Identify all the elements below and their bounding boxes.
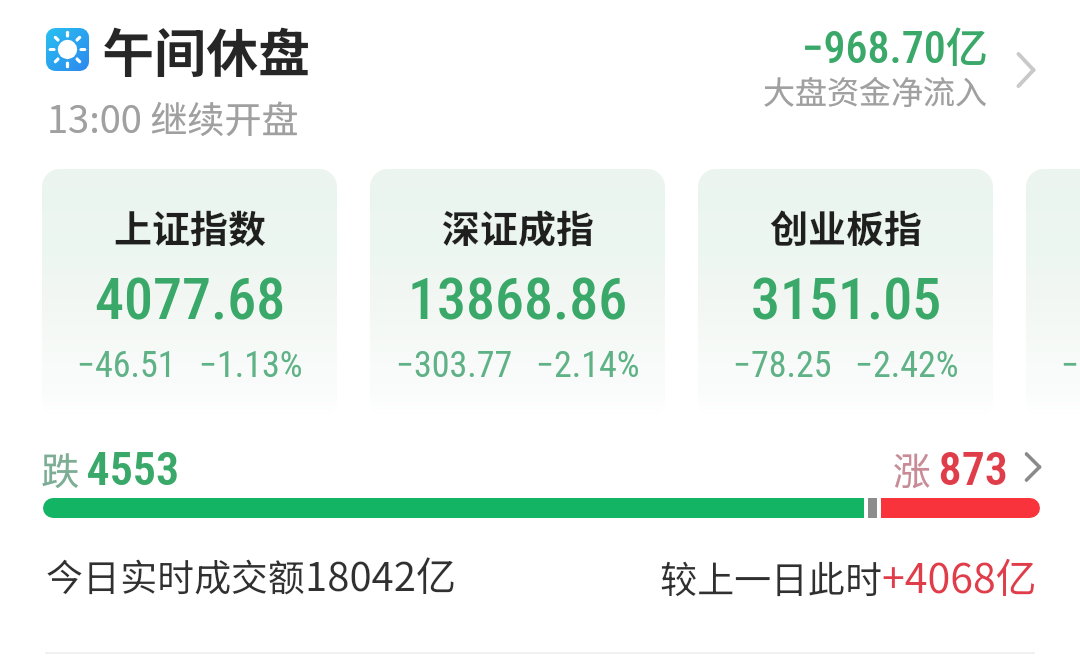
staticText: 大盘资金净流入 [763, 67, 988, 113]
staticText: 涨 873 [893, 441, 1009, 496]
staticText: 深证成指 [442, 199, 595, 254]
button[interactable]: 跌 4553 [41, 437, 1053, 529]
staticText: −2.14% [536, 344, 640, 386]
staticText: 创业板指 [770, 199, 923, 254]
staticText: 午间休盘 [102, 12, 311, 87]
staticText: 13:00 继续开盘 [47, 89, 299, 144]
button[interactable]: 上证指数 [42, 169, 337, 418]
staticText: 较上一日此时+4068亿 [660, 545, 1037, 604]
staticText: −19.22 [1061, 344, 1080, 386]
staticText: −1.13% [199, 344, 303, 386]
staticText: −303.77 [396, 344, 513, 386]
staticText: 今日实时成交额18042亿 [46, 545, 456, 603]
staticText: 上证指数 [114, 199, 267, 254]
button[interactable]: 创业板指 [698, 169, 993, 418]
staticText: 跌 4553 [41, 441, 180, 496]
staticText: −2.42% [855, 344, 959, 386]
other: Advances declines details [1013, 447, 1053, 487]
staticText: −968.70亿 [802, 14, 988, 75]
staticText: 4077.68 [95, 265, 286, 333]
button[interactable]: 科创50 [1026, 169, 1080, 418]
other: Market fund flow details [1004, 48, 1048, 92]
staticText: 13868.86 [408, 265, 628, 333]
button[interactable]: 午间休盘 [46, 12, 311, 87]
button[interactable]: 深证成指 [370, 169, 665, 418]
staticText: 3151.05 [751, 265, 942, 333]
button[interactable]: −968.70亿 [733, 14, 1048, 124]
staticText: −78.25 [733, 344, 832, 386]
staticText: −46.51 [77, 344, 176, 386]
